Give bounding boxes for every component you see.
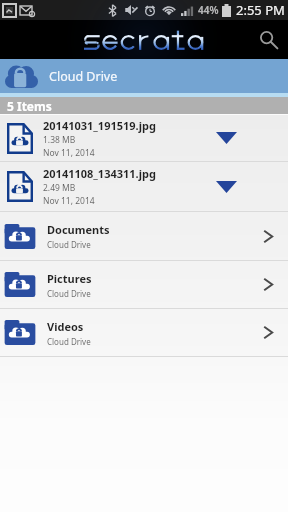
button[interactable]: Pictures [0,261,288,308]
staticText: Videos [47,319,84,334]
button[interactable]: Show file actions [164,162,288,211]
button[interactable]: Open Pictures folder [248,261,288,308]
staticText: Cloud Drive [47,239,91,250]
staticText: Cloud Drive [47,336,91,347]
button[interactable]: Open Videos folder [248,309,288,356]
button[interactable]: Search [250,21,288,59]
staticText: Cloud Drive [47,288,91,299]
staticText: 20141108_134311.jpg [43,166,156,181]
staticText: 20141031_191519.jpg [43,118,156,133]
staticText: 5 Items [7,98,52,114]
staticText: Cloud Drive [49,68,118,85]
staticText: Documents [47,222,110,237]
button[interactable]: Cloud Drive [0,59,288,93]
button[interactable]: 20141108_134311.jpg [0,162,288,211]
staticText: Pictures [47,271,92,286]
staticText: 2:55 PM [236,1,285,19]
staticText: Nov 11, 2014 [43,147,95,159]
button[interactable]: 20141031_191519.jpg [0,115,288,161]
button[interactable]: Show file actions [164,115,288,161]
staticText: 1.38 MB [43,134,76,146]
button[interactable]: Documents [0,212,288,260]
staticText: 2.49 MB [43,182,76,194]
button[interactable]: Open Documents folder [248,212,288,260]
button[interactable]: Videos [0,309,288,356]
staticText: 44% [198,3,219,17]
staticText: Nov 11, 2014 [43,195,95,207]
